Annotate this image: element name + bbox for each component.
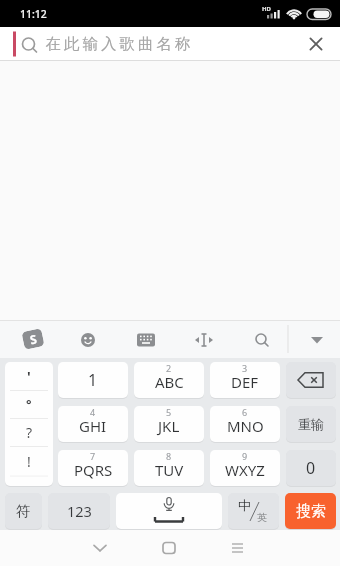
staticText: 2 bbox=[166, 362, 172, 374]
staticText: 9 bbox=[242, 450, 248, 462]
button[interactable]: 0 bbox=[286, 450, 336, 486]
staticText: 中 bbox=[238, 497, 251, 513]
staticText: 1 bbox=[88, 369, 98, 391]
staticText: 在此输入歌曲名称 bbox=[44, 34, 192, 54]
button[interactable]: 123 bbox=[48, 493, 110, 529]
staticText: 5 bbox=[166, 406, 172, 418]
staticText: 7 bbox=[90, 450, 96, 462]
staticText: 123 bbox=[67, 501, 92, 521]
staticText: 英 bbox=[257, 511, 267, 524]
button[interactable]: ! bbox=[5, 447, 53, 475]
button[interactable] bbox=[116, 493, 222, 529]
staticText: 0 bbox=[306, 457, 316, 479]
button[interactable]: 符 bbox=[5, 493, 42, 529]
button[interactable]: ' bbox=[5, 362, 53, 390]
button[interactable]: 6 bbox=[210, 406, 280, 442]
button[interactable]: 2 bbox=[134, 362, 204, 398]
staticText: 6 bbox=[242, 406, 248, 418]
button[interactable]: 中 bbox=[228, 493, 279, 529]
staticText: GHI bbox=[79, 416, 107, 436]
button[interactable] bbox=[0, 530, 114, 566]
staticText: JKL bbox=[158, 416, 180, 436]
staticText: S bbox=[28, 330, 39, 347]
staticText: ? bbox=[26, 423, 33, 442]
button[interactable]: 7 bbox=[58, 450, 128, 486]
staticText: ABC bbox=[155, 372, 184, 392]
staticText: 重输 bbox=[298, 416, 324, 432]
staticText: 3 bbox=[242, 362, 248, 374]
button[interactable]: 8 bbox=[134, 450, 204, 486]
staticText: ° bbox=[26, 395, 32, 413]
button[interactable]: 搜索 bbox=[285, 493, 336, 529]
button[interactable]: 5 bbox=[134, 406, 204, 442]
button[interactable] bbox=[286, 362, 336, 398]
button[interactable]: ° bbox=[5, 390, 53, 418]
button[interactable]: 1 bbox=[58, 362, 128, 398]
button[interactable]: 3 bbox=[210, 362, 280, 398]
button[interactable]: 4 bbox=[58, 406, 128, 442]
staticText: HD bbox=[262, 5, 271, 13]
staticText: 11:12 bbox=[20, 7, 47, 21]
staticText: MNO bbox=[227, 416, 264, 436]
staticText: PQRS bbox=[74, 460, 113, 480]
button[interactable] bbox=[114, 530, 227, 566]
staticText: 符 bbox=[16, 502, 31, 520]
button[interactable]: ? bbox=[5, 418, 53, 446]
staticText: 搜索 bbox=[296, 502, 326, 521]
staticText: TUV bbox=[155, 460, 184, 480]
button[interactable]: S bbox=[21, 328, 45, 350]
staticText: ' bbox=[27, 367, 31, 386]
button[interactable]: 9 bbox=[210, 450, 280, 486]
button[interactable] bbox=[227, 530, 340, 566]
staticText: 8 bbox=[166, 450, 172, 462]
staticText: ! bbox=[27, 452, 31, 471]
button[interactable]: 重输 bbox=[286, 406, 336, 442]
staticText: WXYZ bbox=[225, 460, 265, 480]
staticText: 4 bbox=[90, 406, 96, 418]
staticText: DEF bbox=[231, 372, 259, 392]
